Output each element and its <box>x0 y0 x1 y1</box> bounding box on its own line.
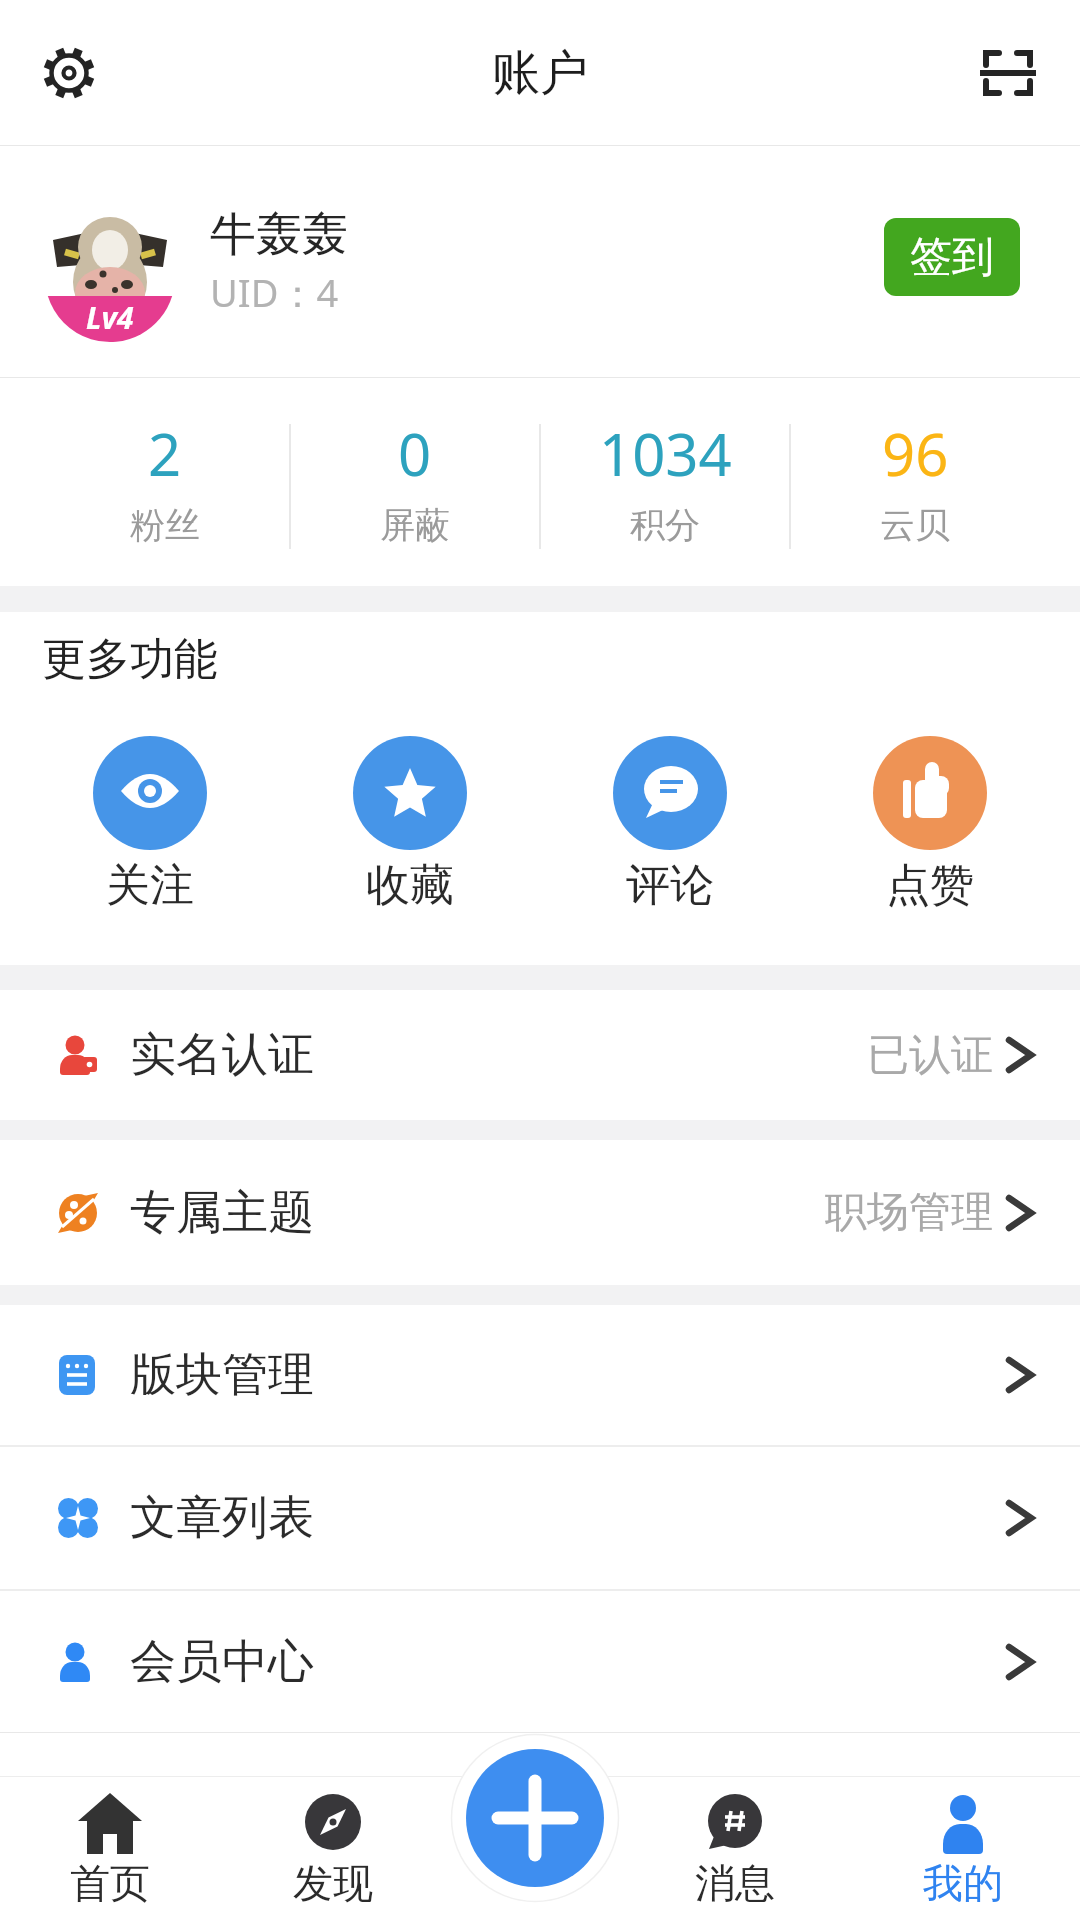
staticText: 我的 <box>923 1858 1003 1908</box>
button[interactable]: 点赞 <box>873 736 987 913</box>
button[interactable] <box>41 45 97 101</box>
staticText: 签到 <box>910 231 994 284</box>
staticText: 屏蔽 <box>380 503 450 547</box>
button[interactable]: 收藏 <box>353 736 467 913</box>
button[interactable]: 版块管理 <box>0 1305 1080 1445</box>
staticText: 首页 <box>70 1858 150 1908</box>
staticText: 积分 <box>630 503 700 547</box>
staticText: 2 <box>148 414 182 493</box>
staticText: UID：4 <box>210 266 339 318</box>
button[interactable]: 发现 <box>220 1776 445 1920</box>
staticText: 已认证 <box>867 1029 993 1082</box>
button[interactable]: 2 <box>40 378 290 586</box>
staticText: 版块管理 <box>130 1346 314 1404</box>
staticText: 评论 <box>626 858 714 913</box>
button[interactable]: 首页 <box>0 1776 220 1920</box>
staticText: 会员中心 <box>130 1633 314 1691</box>
button[interactable]: 会员中心 <box>0 1591 1080 1732</box>
button[interactable] <box>466 1749 604 1887</box>
staticText: 云贝 <box>880 503 950 547</box>
staticText: 职场管理 <box>825 1186 993 1239</box>
button[interactable]: 评论 <box>613 736 727 913</box>
button[interactable]: 实名认证 <box>0 990 1080 1120</box>
button[interactable]: 0 <box>290 378 540 586</box>
staticText: 收藏 <box>366 858 454 913</box>
button[interactable]: 我的 <box>845 1776 1080 1920</box>
button[interactable]: 消息 <box>625 1776 845 1920</box>
button[interactable]: 关注 <box>93 736 207 913</box>
staticText: 96 <box>882 414 949 493</box>
button[interactable]: 1034 <box>540 378 790 586</box>
staticText: Lv4 <box>86 297 134 338</box>
staticText: 0 <box>398 414 432 493</box>
staticText: 消息 <box>695 1858 775 1908</box>
staticText: 文章列表 <box>130 1489 314 1547</box>
button[interactable] <box>980 45 1036 101</box>
staticText: 牛轰轰 <box>210 206 348 264</box>
staticText: 1034 <box>599 414 732 493</box>
staticText: 账户 <box>492 43 588 103</box>
button[interactable]: 签到 <box>884 218 1020 296</box>
staticText: 点赞 <box>886 858 974 913</box>
staticText: 更多功能 <box>42 632 218 687</box>
button[interactable]: 96 <box>790 378 1040 586</box>
staticText: 专属主题 <box>130 1184 314 1242</box>
staticText: 粉丝 <box>130 503 200 547</box>
button[interactable]: 专属主题 <box>0 1140 1080 1285</box>
staticText: 实名认证 <box>130 1026 314 1084</box>
button[interactable]: 文章列表 <box>0 1447 1080 1589</box>
staticText: 发现 <box>293 1858 373 1908</box>
staticText: 关注 <box>106 858 194 913</box>
